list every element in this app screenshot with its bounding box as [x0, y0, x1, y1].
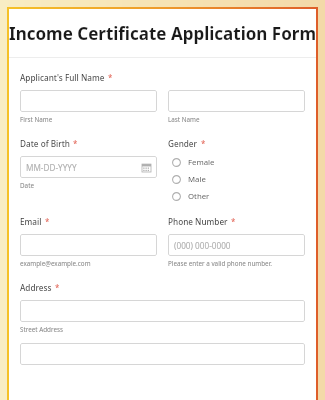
- staticText: Phone Number: [168, 216, 228, 227]
- staticText: *: [201, 138, 206, 149]
- staticText: *: [108, 72, 113, 83]
- staticText: Email: [20, 216, 42, 227]
- button[interactable]: [20, 234, 157, 256]
- button[interactable]: [168, 90, 305, 112]
- staticText: First Name: [20, 115, 53, 124]
- staticText: *: [45, 216, 50, 227]
- button[interactable]: MM-DD-YYYY: [20, 156, 157, 178]
- button[interactable]: [20, 300, 305, 322]
- button[interactable]: (000) 000-0000: [168, 234, 305, 256]
- staticText: Female: [188, 157, 215, 168]
- staticText: *: [55, 282, 60, 293]
- staticText: example@example.com: [20, 259, 91, 268]
- staticText: Income Certificate Application Form: [9, 22, 316, 45]
- staticText: Male: [188, 174, 206, 185]
- button[interactable]: [20, 343, 305, 365]
- staticText: Applicant's Full Name: [20, 72, 105, 83]
- staticText: (000) 000-0000: [174, 240, 299, 251]
- staticText: Date of Birth: [20, 138, 70, 149]
- staticText: Last Name: [168, 115, 200, 124]
- button[interactable]: [20, 90, 157, 112]
- staticText: Date: [20, 181, 34, 190]
- staticText: *: [231, 216, 236, 227]
- staticText: Address: [20, 282, 52, 293]
- button[interactable]: Female: [172, 155, 305, 169]
- other: Pick date: [142, 163, 151, 172]
- button[interactable]: Male: [172, 172, 305, 186]
- staticText: MM-DD-YYYY: [26, 162, 142, 173]
- staticText: *: [73, 138, 78, 149]
- staticText: Gender: [168, 138, 198, 149]
- button[interactable]: Other: [172, 189, 305, 203]
- staticText: Other: [188, 191, 210, 202]
- staticText: Street Address: [20, 325, 64, 334]
- staticText: Please enter a valid phone number.: [168, 259, 272, 268]
